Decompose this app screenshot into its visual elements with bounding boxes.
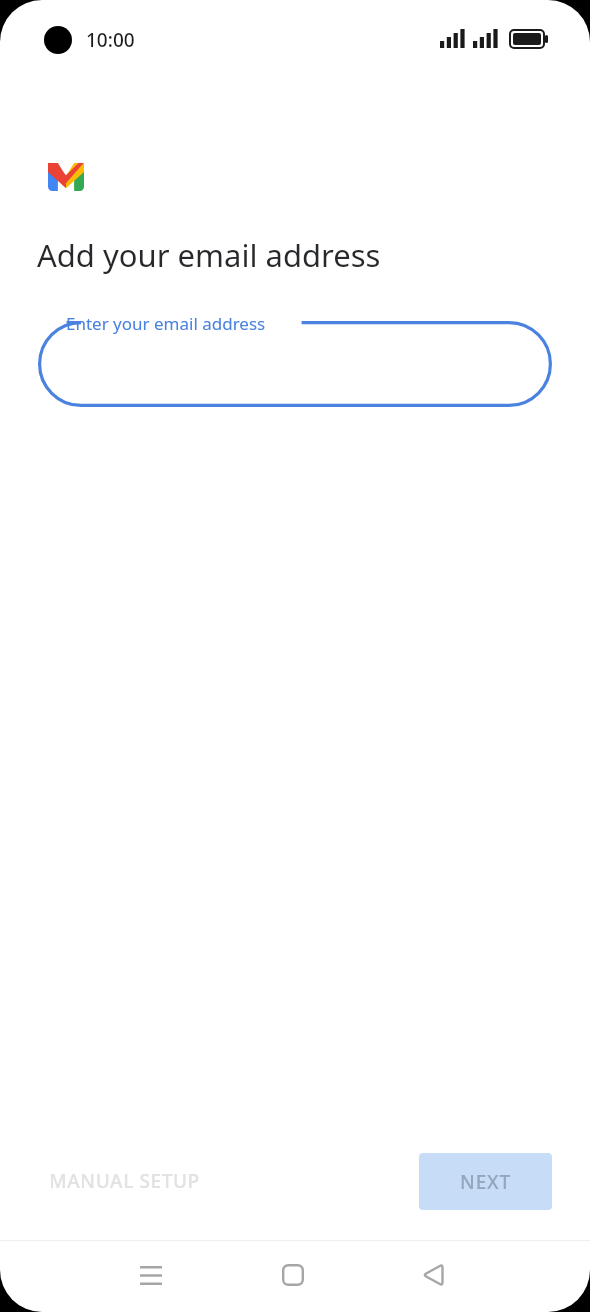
staticText: MANUAL SETUP <box>49 1168 200 1194</box>
button[interactable] <box>38 321 552 407</box>
staticText: Add your email address <box>37 234 381 276</box>
staticText: 10:00 <box>86 27 135 53</box>
staticText: NEXT <box>460 1169 511 1195</box>
button[interactable]: Home <box>252 1242 334 1308</box>
button[interactable]: Recent apps <box>110 1242 192 1308</box>
button[interactable]: Back <box>392 1242 474 1308</box>
button[interactable]: MANUAL SETUP <box>22 1157 226 1205</box>
staticText: Enter your email address <box>66 312 266 335</box>
button[interactable]: NEXT <box>419 1153 552 1210</box>
